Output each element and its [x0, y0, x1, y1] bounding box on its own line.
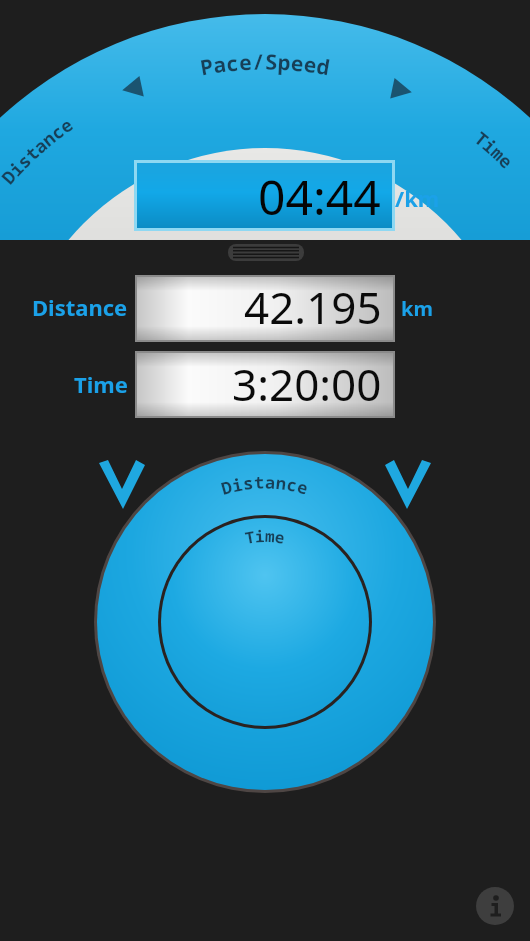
- button[interactable]: Previous mode: [110, 70, 156, 108]
- button[interactable]: Next mode: [378, 70, 424, 108]
- button[interactable]: Time value 3:20:00: [137, 353, 393, 416]
- button[interactable]: Calculate dial: [97, 454, 433, 790]
- button[interactable]: Distance value 42.195 km: [137, 277, 393, 340]
- button[interactable]: Pace value 04:44: [137, 163, 392, 228]
- button[interactable]: Info: [476, 887, 514, 925]
